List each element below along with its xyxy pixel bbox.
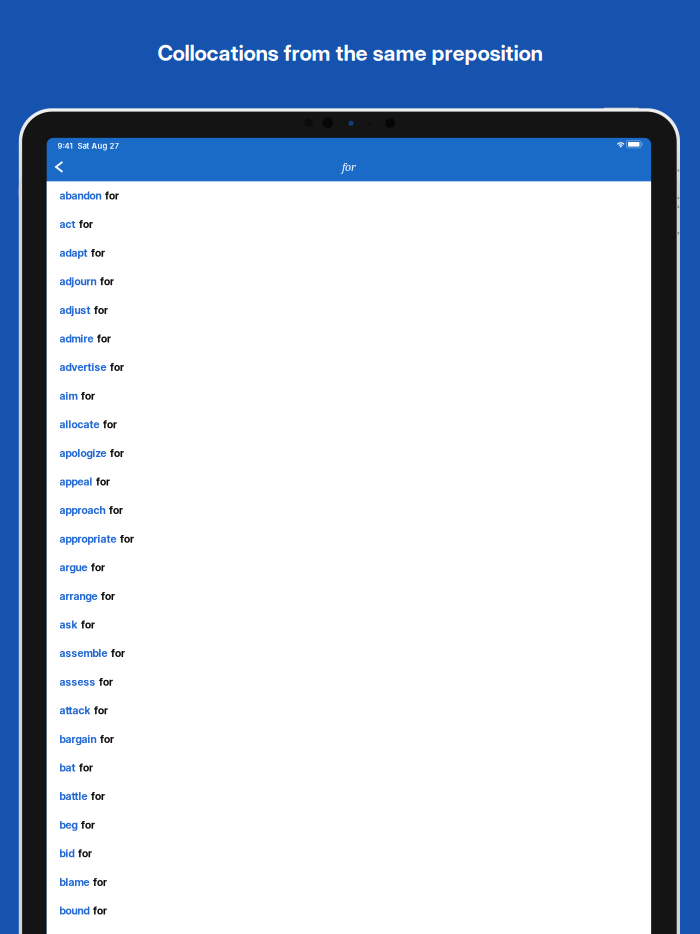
staticText: bat [59,761,75,774]
staticText: adapt [59,246,87,259]
staticText: aim [59,389,77,402]
button[interactable]: battle [47,782,651,810]
staticText: for [94,704,108,717]
button[interactable]: allocate [47,410,651,439]
button[interactable]: arrange [47,582,651,610]
button[interactable]: bid [47,839,651,868]
button[interactable]: aim [47,381,651,410]
button[interactable]: abandon [47,181,651,210]
staticText: for [100,275,114,288]
staticText: adjust [59,303,90,316]
button[interactable]: adjust [47,296,651,324]
button[interactable]: ask [47,610,651,639]
button[interactable]: appropriate [47,524,651,553]
staticText: for [91,246,105,259]
staticText: bargain [59,732,96,745]
staticText: for [94,303,108,316]
button[interactable]: apologize [47,439,651,467]
staticText: for [101,589,115,602]
button[interactable]: argue [47,553,651,582]
staticText: beg [59,818,77,831]
staticText: for [78,847,92,860]
staticText: apologize [59,446,106,459]
staticText: for [81,618,95,631]
staticText: admire [59,332,93,345]
staticText: for [111,647,125,660]
button[interactable]: assemble [47,639,651,667]
button[interactable]: bound [47,896,651,925]
button[interactable]: advertise [47,353,651,381]
staticText: for [105,189,119,202]
staticText: argue [59,561,87,574]
staticText: for [109,504,123,517]
button[interactable]: act [47,210,651,238]
staticText: appeal [59,475,92,488]
staticText: for [91,561,105,574]
button[interactable]: bargain [47,725,651,753]
staticText: for [79,218,93,231]
button[interactable]: attack [47,696,651,725]
button[interactable]: adjourn [47,267,651,296]
staticText: for [120,532,134,545]
button[interactable]: adapt [47,238,651,267]
button[interactable]: beg [47,810,651,839]
staticText: act [59,218,75,231]
button[interactable]: Back [47,152,72,181]
staticText: appropriate [59,532,116,545]
staticText: assemble [59,647,107,660]
staticText: attack [59,704,90,717]
staticText: ask [59,618,77,631]
button[interactable]: appeal [47,467,651,496]
staticText: for [99,675,113,688]
staticText: for [91,790,105,803]
staticText: for [97,332,111,345]
staticText: battle [59,790,87,803]
staticText: for [79,761,93,774]
staticText: allocate [59,418,99,431]
staticText: arrange [59,589,97,602]
staticText: Sat Aug 27 [78,141,119,151]
button[interactable]: approach [47,496,651,524]
staticText: for [96,475,110,488]
staticText: abandon [59,189,101,202]
staticText: for [93,875,107,888]
staticText: for [110,446,124,459]
staticText: 9:41 [58,141,73,151]
button[interactable]: assess [47,667,651,696]
button[interactable]: blame [47,868,651,896]
staticText: blame [59,875,89,888]
staticText: for [110,361,124,374]
staticText: Collocations from the same preposition [157,40,542,66]
staticText: for [342,160,356,174]
staticText: for [81,818,95,831]
button[interactable]: bat [47,753,651,782]
staticText: for [81,389,95,402]
staticText: bound [59,904,89,917]
staticText: for [103,418,117,431]
staticText: adjourn [59,275,96,288]
staticText: bid [59,847,74,860]
staticText: for [93,904,107,917]
staticText: assess [59,675,95,688]
staticText: advertise [59,361,106,374]
button[interactable]: admire [47,324,651,353]
staticText: for [100,732,114,745]
staticText: approach [59,504,105,517]
